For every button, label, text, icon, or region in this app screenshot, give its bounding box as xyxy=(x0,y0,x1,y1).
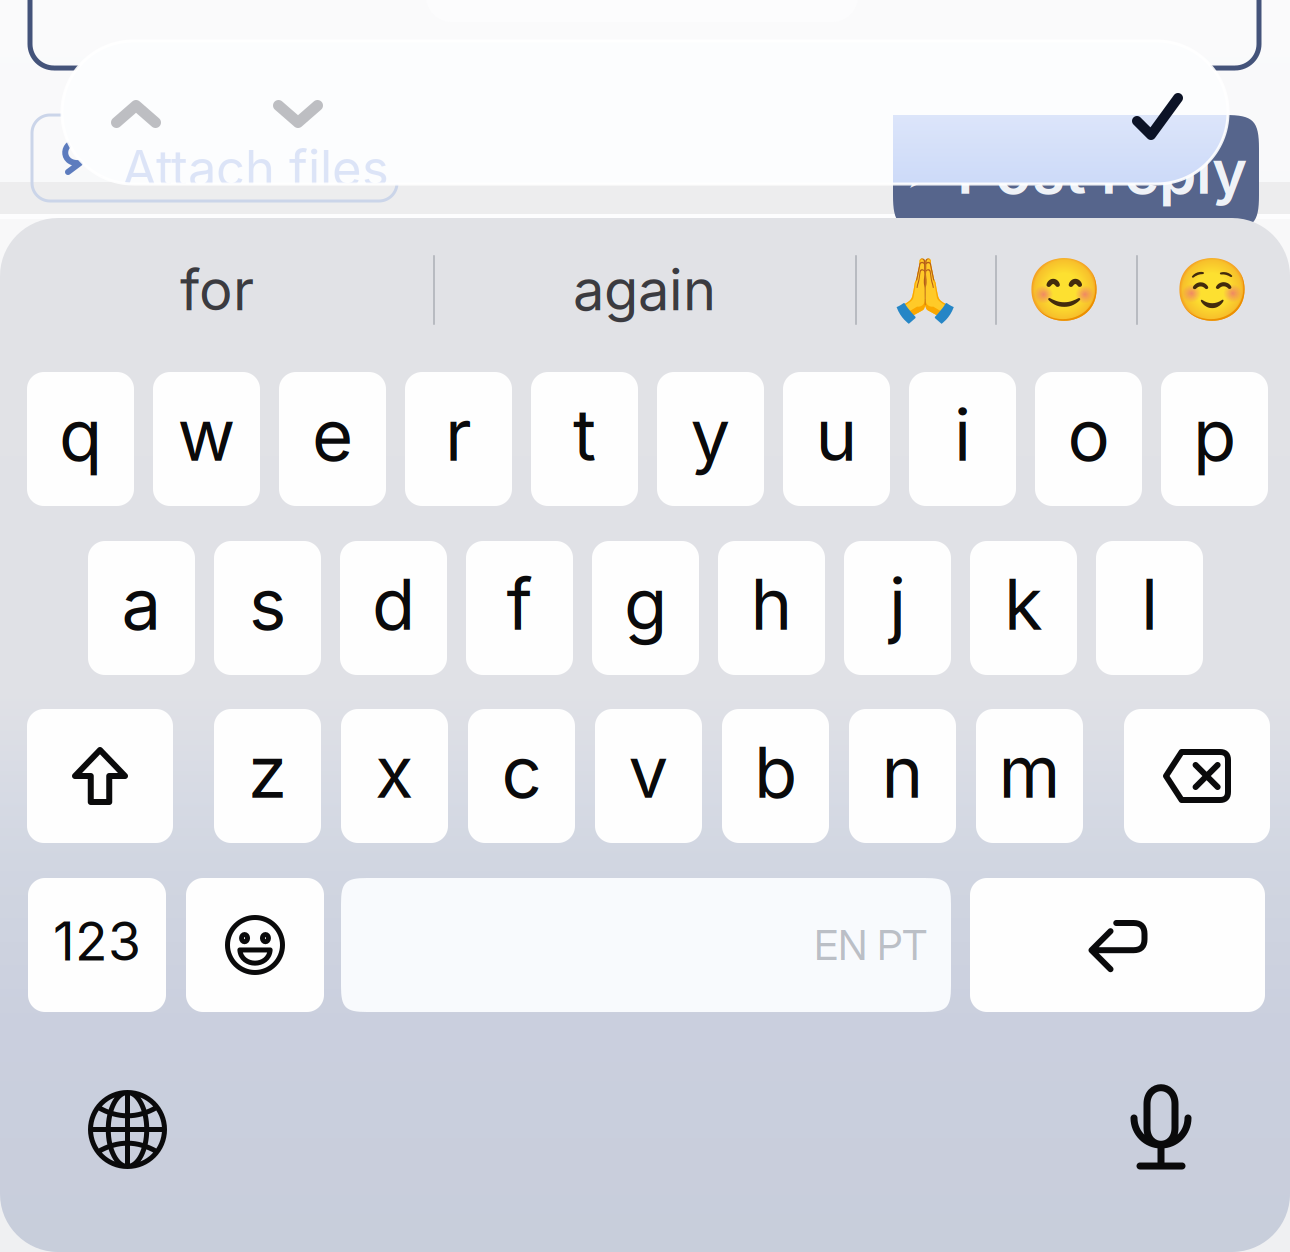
staticText: w xyxy=(177,392,235,478)
staticText: Attach files xyxy=(100,127,367,189)
staticText: a xyxy=(121,561,161,647)
staticText: v xyxy=(628,729,668,815)
staticText: 🙏 xyxy=(886,254,962,326)
staticText: for xyxy=(180,256,254,324)
staticText: q xyxy=(59,392,102,478)
staticText: l xyxy=(1141,561,1158,647)
button[interactable]: Next field xyxy=(273,100,323,128)
button[interactable]: d xyxy=(340,541,447,675)
button[interactable]: c xyxy=(468,709,575,843)
button[interactable]: f xyxy=(466,541,573,675)
staticText: u xyxy=(815,392,857,478)
staticText: e xyxy=(312,392,353,478)
staticText: Post reply xyxy=(957,136,1247,208)
button[interactable]: 123 xyxy=(28,878,166,1012)
button[interactable]: Shift xyxy=(27,709,173,843)
staticText: n xyxy=(881,729,923,815)
button[interactable]: m xyxy=(976,709,1083,843)
button[interactable]: b xyxy=(722,709,829,843)
button[interactable]: Next keyboard xyxy=(88,1090,167,1169)
staticText: x xyxy=(375,729,414,815)
staticText: again xyxy=(573,256,716,324)
button[interactable]: ☺️ xyxy=(1134,236,1290,344)
button[interactable]: w xyxy=(153,372,260,506)
staticText: k xyxy=(1004,561,1043,647)
button[interactable]: o xyxy=(1035,372,1142,506)
staticText: ☺️ xyxy=(1174,254,1250,326)
staticText: p xyxy=(1193,392,1236,478)
button[interactable]: ➤ xyxy=(893,115,1259,229)
button[interactable]: again xyxy=(434,236,855,344)
button[interactable]: n xyxy=(849,709,956,843)
staticText: m xyxy=(998,729,1060,815)
staticText: ➤ xyxy=(905,146,943,198)
staticText: c xyxy=(501,729,541,815)
button[interactable]: l xyxy=(1096,541,1203,675)
button[interactable]: h xyxy=(718,541,825,675)
staticText: t xyxy=(573,392,596,478)
button[interactable]: Emoji xyxy=(186,878,324,1012)
staticText: EN PT xyxy=(814,920,927,970)
staticText: 😊 xyxy=(1026,254,1102,326)
staticText: o xyxy=(1067,392,1109,478)
button[interactable]: Attach files xyxy=(32,115,397,201)
staticText: 123 xyxy=(53,909,141,973)
button[interactable]: g xyxy=(592,541,699,675)
button[interactable]: Dictate xyxy=(1132,1086,1190,1172)
button[interactable]: EN PT xyxy=(341,878,951,1012)
staticText: b xyxy=(754,729,797,815)
staticText: d xyxy=(372,561,415,647)
button[interactable]: i xyxy=(909,372,1016,506)
button[interactable]: y xyxy=(657,372,764,506)
button[interactable]: e xyxy=(279,372,386,506)
staticText: f xyxy=(506,561,532,647)
staticText: y xyxy=(690,392,730,478)
button[interactable]: z xyxy=(214,709,321,843)
button[interactable]: Return xyxy=(970,878,1265,1012)
button[interactable]: t xyxy=(531,372,638,506)
button[interactable]: x xyxy=(341,709,448,843)
staticText: i xyxy=(954,392,971,478)
button[interactable]: a xyxy=(88,541,195,675)
staticText: Attach files xyxy=(122,138,389,199)
button[interactable]: q xyxy=(27,372,134,506)
button[interactable]: Delete xyxy=(1124,709,1270,843)
staticText: z xyxy=(248,729,287,815)
staticText: s xyxy=(249,561,286,647)
button[interactable]: p xyxy=(1161,372,1268,506)
staticText: j xyxy=(889,561,906,647)
button[interactable]: 😊 xyxy=(994,236,1134,344)
button[interactable]: v xyxy=(595,709,702,843)
staticText: h xyxy=(750,561,792,647)
button[interactable]: Done xyxy=(1132,93,1183,140)
staticText: r xyxy=(445,392,472,478)
button[interactable]: k xyxy=(970,541,1077,675)
button[interactable]: r xyxy=(405,372,512,506)
button[interactable]: 🙏 xyxy=(855,236,994,344)
button[interactable]: Previous field xyxy=(111,100,161,128)
button[interactable]: u xyxy=(783,372,890,506)
staticText: g xyxy=(624,561,667,647)
button[interactable]: s xyxy=(214,541,321,675)
button[interactable]: j xyxy=(844,541,951,675)
button[interactable]: for xyxy=(0,236,434,344)
